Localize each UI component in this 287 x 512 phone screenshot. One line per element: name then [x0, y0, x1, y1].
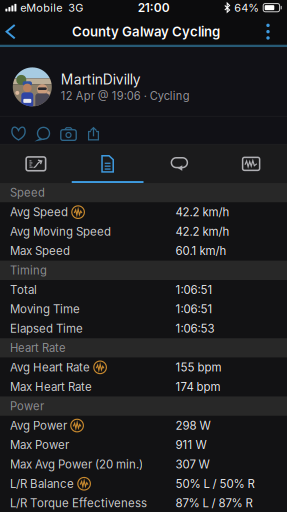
button[interactable]: Max Heart Rate [0, 377, 287, 396]
staticText: Max Avg Power (20 min.) [10, 457, 143, 471]
button[interactable]: Like [6, 121, 31, 147]
button[interactable]: Analysis [215, 145, 287, 183]
button[interactable]: Photos [56, 121, 81, 147]
button[interactable]: Elapsed Time [0, 319, 287, 338]
staticText: Max Power [10, 438, 69, 452]
staticText: 42.2 km/h [175, 205, 229, 219]
button[interactable]: Avg Moving Speed [0, 222, 287, 241]
button[interactable]: Avg Speed [0, 202, 287, 222]
staticText: 155 bpm [175, 360, 221, 374]
button[interactable]: MartinDivilly [0, 47, 287, 117]
staticText: Max Speed [10, 244, 70, 258]
button[interactable]: Details [72, 145, 144, 183]
staticText: 3G [68, 1, 83, 14]
staticText: Avg Power [10, 419, 67, 432]
button[interactable]: Back [0, 16, 30, 47]
staticText: L/R Torque Effectiveness [10, 496, 147, 510]
staticText: 1:06:53 [175, 322, 214, 335]
button[interactable]: More options [252, 16, 287, 47]
button[interactable]: Map [0, 145, 72, 183]
staticText: Avg Speed [10, 205, 68, 219]
staticText: 50% L / 50% R [175, 477, 254, 491]
button[interactable]: Max Avg Power (20 min.) [0, 455, 287, 474]
staticText: 174 bpm [175, 380, 220, 394]
button[interactable]: Max Power [0, 435, 287, 455]
staticText: County Galway Cycling [72, 24, 220, 40]
button[interactable]: Laps [143, 145, 215, 183]
staticText: Total [10, 283, 37, 297]
button[interactable]: Total [0, 280, 287, 299]
button[interactable]: L/R Balance [0, 474, 287, 493]
button[interactable]: Avg Power [0, 416, 287, 435]
staticText: 911 W [175, 438, 206, 452]
staticText: 87% L / 87% R [175, 496, 252, 510]
staticText: L/R Balance [10, 477, 74, 491]
staticText: 1:06:51 [175, 283, 212, 297]
button[interactable]: Max Speed [0, 241, 287, 261]
staticText: 42.2 km/h [175, 225, 229, 238]
staticText: Timing [10, 264, 47, 277]
staticText: Max Heart Rate [10, 380, 92, 394]
button[interactable]: Moving Time [0, 299, 287, 319]
button[interactable]: Avg Heart Rate [0, 358, 287, 377]
staticText: 64% [234, 1, 259, 14]
button[interactable]: L/R Torque Effectiveness [0, 493, 287, 512]
staticText: Avg Moving Speed [10, 225, 111, 238]
staticText: Moving Time [10, 302, 80, 316]
staticText: Heart Rate [10, 341, 66, 355]
staticText: Power [10, 399, 44, 413]
staticText: Speed [10, 186, 45, 200]
staticText: Elapsed Time [10, 322, 83, 335]
button[interactable]: Share [81, 121, 106, 147]
staticText: 307 W [175, 457, 209, 471]
staticText: 60.1 km/h [175, 244, 226, 258]
button[interactable]: Comment [31, 121, 56, 147]
staticText: eMobile [20, 1, 62, 14]
staticText: Avg Heart Rate [10, 360, 90, 374]
staticText: 298 W [175, 419, 210, 432]
staticText: 21:00 [138, 0, 170, 15]
staticText: MartinDivilly [61, 71, 141, 88]
staticText: 1:06:51 [175, 302, 212, 316]
staticText: 12 Apr @ 19:06 · Cycling [61, 89, 190, 103]
